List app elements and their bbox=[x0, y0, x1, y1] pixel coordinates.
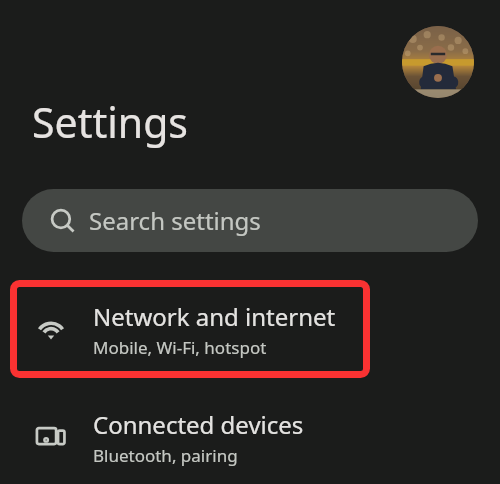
staticText: Connected devices bbox=[93, 408, 304, 441]
button[interactable]: Account profile bbox=[402, 26, 474, 98]
button[interactable]: Connected devices bbox=[10, 390, 370, 484]
staticText: Settings bbox=[32, 94, 189, 150]
button[interactable]: Search settings bbox=[22, 189, 478, 252]
staticText: Network and internet bbox=[93, 300, 336, 333]
staticText: Bluetooth, pairing bbox=[93, 444, 238, 467]
staticText: Mobile, Wi-Fi, hotspot bbox=[93, 336, 267, 359]
staticText: Search settings bbox=[89, 204, 261, 237]
button[interactable]: Network and internet bbox=[10, 280, 370, 378]
